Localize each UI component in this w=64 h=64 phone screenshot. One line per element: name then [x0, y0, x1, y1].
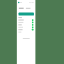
- button[interactable]: [17, 21, 36, 23]
- button[interactable]: [17, 24, 36, 26]
- button[interactable]: [17, 26, 36, 28]
- button[interactable]: Account: [18, 2, 20, 4]
- button[interactable]: [17, 29, 36, 31]
- button[interactable]: [17, 16, 36, 18]
- button[interactable]: [17, 19, 36, 21]
- button[interactable]: [17, 31, 36, 33]
- button[interactable]: Banner: [19, 13, 34, 16]
